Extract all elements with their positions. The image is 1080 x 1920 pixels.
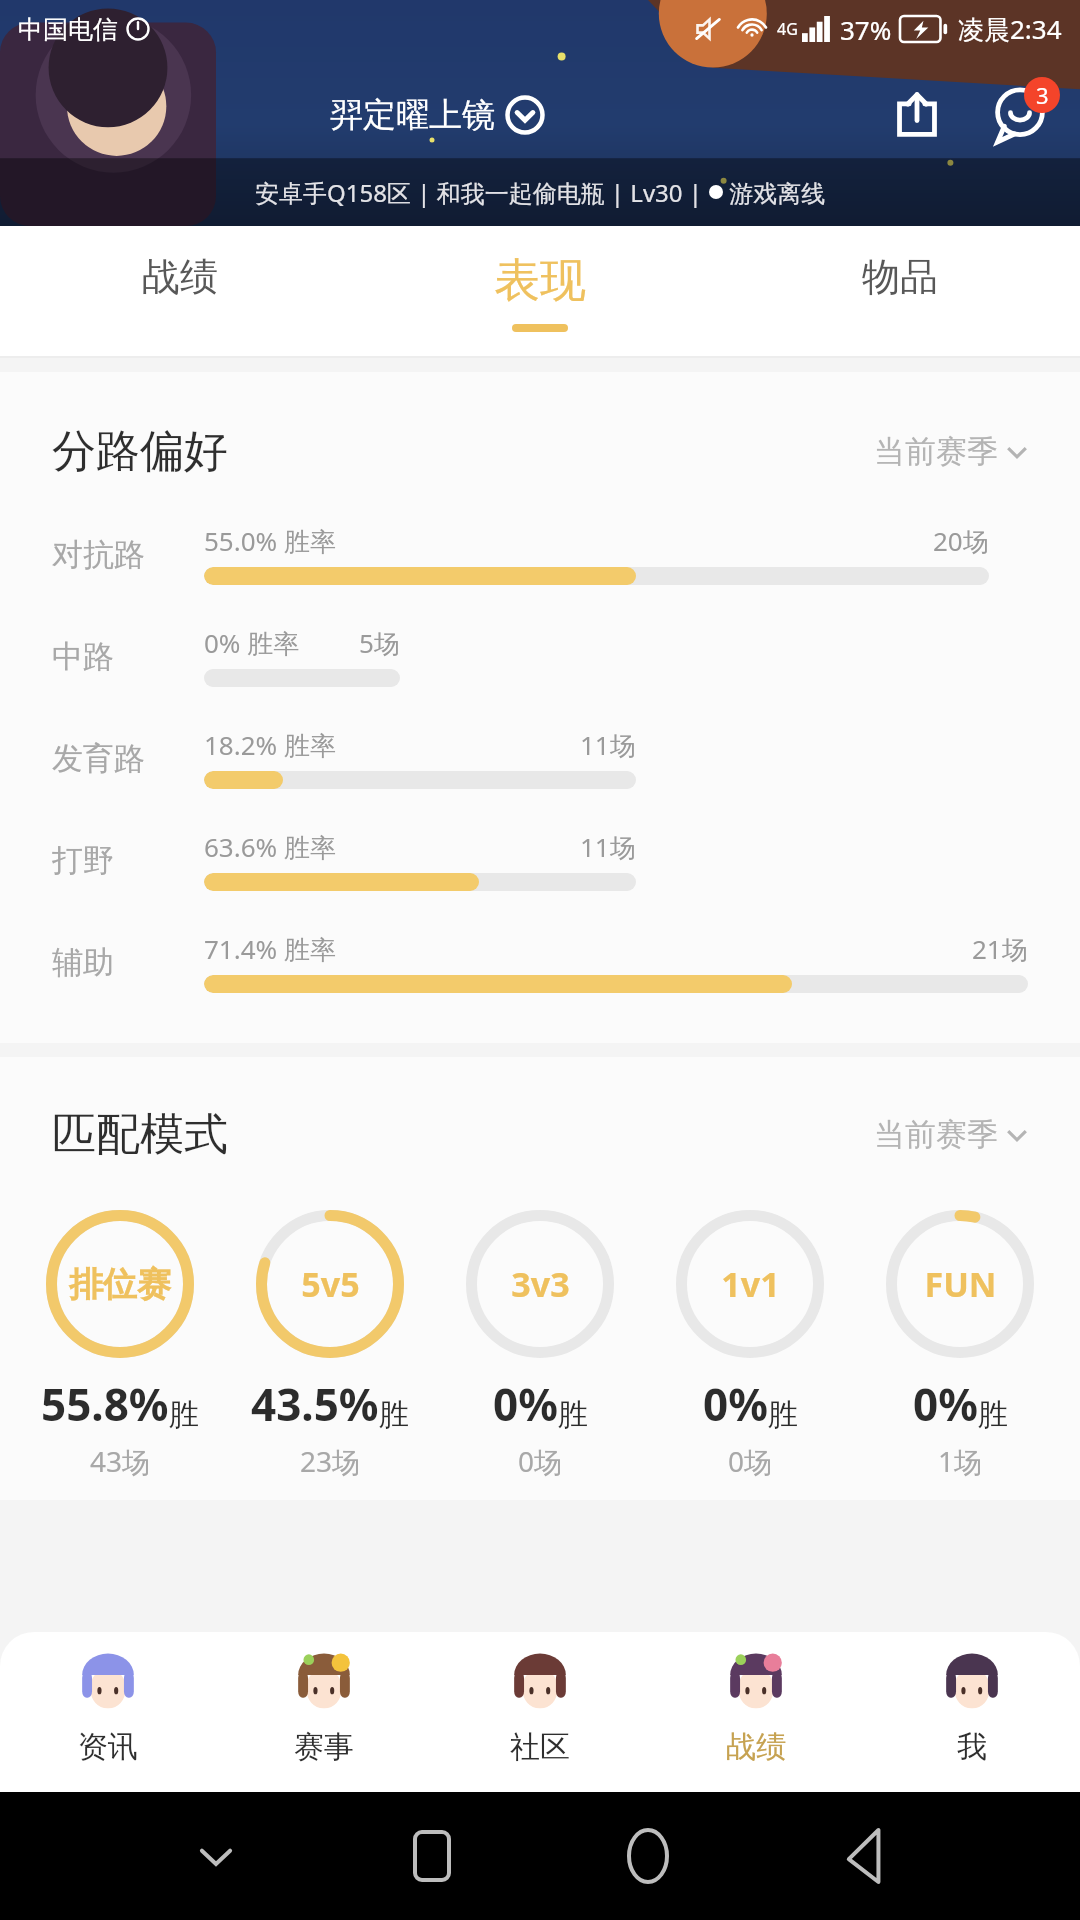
button[interactable]: Messages bbox=[978, 73, 1062, 157]
button[interactable]: FUN bbox=[860, 1210, 1060, 1480]
staticText: 辅助 bbox=[52, 943, 114, 982]
button[interactable]: 社区 bbox=[432, 1646, 648, 1792]
staticText: 社区 bbox=[510, 1728, 570, 1766]
staticText: FUN bbox=[924, 1261, 997, 1307]
button[interactable]: 资讯 bbox=[0, 1646, 216, 1792]
staticText: 战绩 bbox=[726, 1728, 786, 1766]
button[interactable]: 表现 bbox=[360, 226, 720, 358]
staticText: 1v1 bbox=[721, 1261, 780, 1307]
button[interactable]: 1v1 bbox=[650, 1210, 850, 1480]
staticText: 匹配模式 bbox=[52, 1107, 228, 1162]
button[interactable]: 辅助 bbox=[52, 931, 1028, 993]
staticText: 20场 bbox=[933, 523, 989, 559]
staticText: 4G bbox=[777, 18, 798, 40]
staticText: 5场 bbox=[359, 625, 400, 661]
staticText: 发育路 bbox=[52, 739, 145, 778]
staticText: 0% bbox=[493, 1374, 558, 1434]
staticText: 表现 bbox=[494, 252, 586, 310]
button[interactable]: Back bbox=[824, 1816, 904, 1896]
staticText: 安卓手Q158区 | 和我一起偷电瓶 | Lv30 | bbox=[255, 176, 709, 209]
staticText: 当前赛季 bbox=[874, 1115, 998, 1154]
staticText: 资讯 bbox=[78, 1728, 138, 1766]
staticText: 胜 bbox=[558, 1396, 588, 1434]
button[interactable]: 物品 bbox=[720, 226, 1080, 358]
staticText: 当前赛季 bbox=[874, 432, 998, 471]
staticText: 43场 bbox=[90, 1442, 151, 1480]
staticText: 打野 bbox=[52, 841, 114, 880]
button[interactable]: 对抗路 bbox=[52, 523, 1028, 585]
staticText: 游戏离线 bbox=[723, 176, 826, 209]
staticText: 0% bbox=[913, 1374, 978, 1434]
button[interactable]: 战绩 bbox=[0, 226, 360, 358]
staticText: 63.6% 胜率 bbox=[204, 829, 336, 865]
staticText: 对抗路 bbox=[52, 535, 145, 574]
staticText: 55.8% bbox=[41, 1374, 169, 1434]
button[interactable]: 5v5 bbox=[230, 1210, 430, 1480]
button[interactable]: Share bbox=[880, 78, 954, 152]
staticText: 0% 胜率 bbox=[204, 625, 300, 661]
button[interactable]: 赛事 bbox=[216, 1646, 432, 1792]
staticText: 赛事 bbox=[294, 1728, 354, 1766]
staticText: 胜 bbox=[379, 1396, 409, 1434]
staticText: 羿定曜上镜 bbox=[330, 94, 495, 136]
button[interactable]: 羿定曜上镜 bbox=[330, 94, 545, 136]
staticText: 43.5% bbox=[251, 1374, 379, 1434]
staticText: 18.2% 胜率 bbox=[204, 727, 336, 763]
staticText: 排位赛 bbox=[69, 1263, 171, 1306]
button[interactable]: 战绩 bbox=[648, 1646, 864, 1792]
staticText: 物品 bbox=[862, 253, 938, 301]
staticText: 55.0% 胜率 bbox=[204, 523, 336, 559]
button[interactable]: 当前赛季 bbox=[874, 1115, 1028, 1154]
staticText: 3v3 bbox=[511, 1261, 570, 1307]
staticText: 5v5 bbox=[301, 1261, 360, 1307]
button[interactable]: Home bbox=[608, 1816, 688, 1896]
button[interactable]: 发育路 bbox=[52, 727, 1028, 789]
staticText: 11场 bbox=[580, 727, 636, 763]
staticText: 胜 bbox=[978, 1396, 1008, 1434]
staticText: 我 bbox=[957, 1728, 987, 1766]
staticText: 中路 bbox=[52, 637, 114, 676]
staticText: 11场 bbox=[580, 829, 636, 865]
button[interactable]: 排位赛 bbox=[20, 1210, 220, 1480]
staticText: 中国电信 bbox=[18, 14, 118, 45]
button[interactable]: 打野 bbox=[52, 829, 1028, 891]
staticText: 战绩 bbox=[142, 253, 218, 301]
staticText: 1场 bbox=[938, 1442, 983, 1480]
staticText: 3 bbox=[1036, 80, 1049, 110]
button[interactable]: 中路 bbox=[52, 625, 1028, 687]
button[interactable]: Recent apps bbox=[392, 1816, 472, 1896]
staticText: 71.4% 胜率 bbox=[204, 931, 336, 967]
staticText: 分路偏好 bbox=[52, 424, 228, 479]
staticText: 23场 bbox=[300, 1442, 361, 1480]
button[interactable]: 3v3 bbox=[440, 1210, 640, 1480]
staticText: 21场 bbox=[972, 931, 1028, 967]
button[interactable]: 当前赛季 bbox=[874, 432, 1028, 471]
staticText: 37% bbox=[840, 12, 892, 47]
staticText: 凌晨2:34 bbox=[958, 11, 1062, 47]
staticText: 0场 bbox=[518, 1442, 563, 1480]
button[interactable]: Hide keyboard bbox=[176, 1816, 256, 1896]
staticText: 胜 bbox=[169, 1396, 199, 1434]
staticText: 0场 bbox=[728, 1442, 773, 1480]
button[interactable]: 我 bbox=[864, 1646, 1080, 1792]
staticText: 0% bbox=[703, 1374, 768, 1434]
staticText: 胜 bbox=[768, 1396, 798, 1434]
